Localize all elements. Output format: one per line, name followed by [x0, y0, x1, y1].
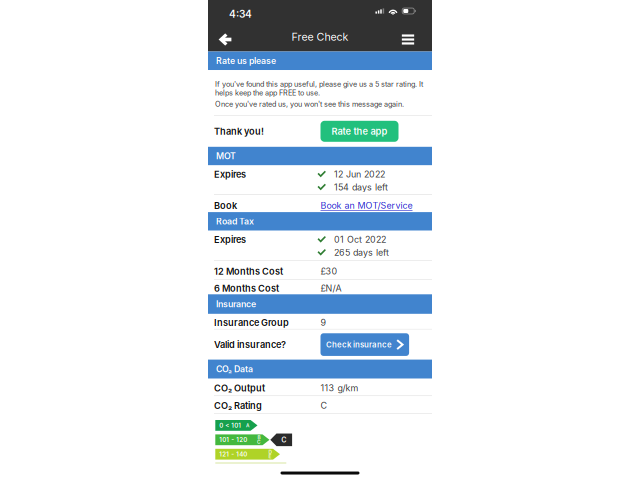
staticText: £N/A [320, 283, 341, 294]
staticText: CO₂ Data [216, 364, 253, 374]
staticText: Road Tax [216, 216, 254, 227]
staticText: If you've found this app useful, please … [215, 80, 423, 97]
staticText: Once you've rated us, you won't see this… [215, 100, 404, 108]
staticText: C [257, 439, 261, 445]
staticText: Expires [214, 169, 246, 180]
staticText: £30 [320, 266, 337, 277]
staticText: Thank you! [214, 126, 264, 137]
staticText: CO₂ Output [214, 383, 265, 394]
button[interactable]: Rate the app [320, 121, 398, 142]
staticText: Rate the app [331, 126, 387, 137]
staticText: Rate us please [216, 55, 276, 66]
button[interactable]: Menu [391, 22, 425, 51]
staticText: Check insurance [326, 340, 392, 349]
button[interactable]: Back [208, 22, 242, 51]
staticText: Book an MOT/Service [320, 200, 412, 211]
staticText: A [246, 422, 249, 428]
staticText: 9 [320, 317, 326, 328]
staticText: C [281, 435, 286, 444]
staticText: Insurance Group [214, 317, 289, 328]
staticText: CO₂ Rating [214, 400, 262, 411]
staticText: 4:34 [229, 8, 252, 20]
staticText: 12 Months Cost [214, 266, 283, 277]
staticText: B [257, 435, 260, 440]
staticText: 101 - 120 [219, 436, 247, 443]
staticText: D [268, 449, 271, 455]
staticText: C [320, 400, 327, 411]
staticText: 121 - 140 [219, 450, 247, 458]
staticText: Valid insurance? [214, 339, 286, 350]
staticText: 113 g/km [320, 383, 358, 393]
staticText: MOT [216, 151, 236, 161]
staticText: 0 < 101 [219, 422, 241, 429]
staticText: 01 Oct 2022 [334, 234, 386, 245]
staticText: 6 Months Cost [214, 283, 279, 294]
staticText: 154 days left [334, 182, 388, 193]
staticText: Expires [214, 234, 246, 245]
staticText: 265 days left [334, 247, 389, 258]
staticText: Insurance [216, 299, 256, 309]
staticText: Free Check [291, 30, 348, 43]
staticText: Book [214, 200, 237, 211]
staticText: E [268, 453, 271, 459]
staticText: 12 Jun 2022 [334, 169, 385, 180]
button[interactable]: Check insurance [320, 333, 409, 356]
